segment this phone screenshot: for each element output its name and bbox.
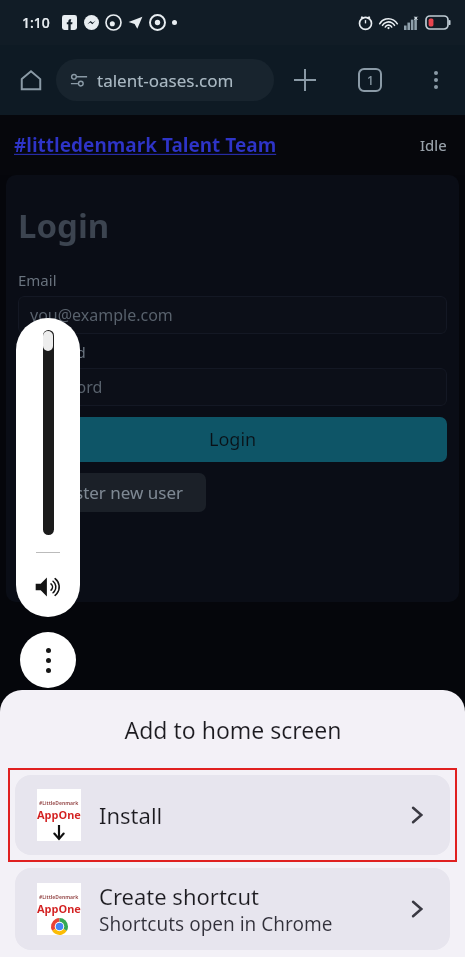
- staticText: Add to home screen: [124, 714, 342, 745]
- staticText: Email: [18, 270, 57, 290]
- button[interactable]: #littledenmark Talent Team: [14, 132, 277, 158]
- button[interactable]: Speaker: [32, 571, 64, 603]
- staticText: Shortcuts open in Chrome: [99, 911, 333, 937]
- staticText: Login: [209, 427, 257, 452]
- button[interactable]: #LittleDenmark: [15, 775, 450, 855]
- staticText: #LittleDenmark: [39, 894, 79, 901]
- button[interactable]: More options: [415, 59, 457, 101]
- button[interactable]: Home: [10, 59, 52, 101]
- button[interactable]: #LittleDenmark: [15, 868, 450, 950]
- button[interactable]: Login: [18, 417, 447, 462]
- staticText: Create shortcut: [99, 881, 259, 911]
- button[interactable]: Volume slider: [16, 318, 80, 617]
- button[interactable]: Switch tabs, 1 open: [348, 58, 392, 102]
- staticText: Password: [30, 376, 103, 398]
- staticText: Idle: [420, 135, 447, 155]
- staticText: you@example.com: [30, 304, 173, 326]
- button[interactable]: More volume settings: [20, 632, 76, 688]
- button[interactable]: Register new user: [18, 473, 206, 512]
- staticText: talent-oases.com: [97, 69, 234, 92]
- staticText: Install: [99, 800, 163, 830]
- staticText: 1: [367, 72, 374, 88]
- staticText: Password: [18, 342, 86, 362]
- button[interactable]: New tab: [283, 58, 327, 102]
- staticText: 1:10: [22, 13, 50, 32]
- staticText: Register new user: [40, 481, 184, 504]
- button[interactable]: talent-oases.com: [56, 59, 274, 101]
- staticText: Login: [18, 203, 110, 248]
- staticText: AppOne: [37, 807, 81, 822]
- staticText: AppOne: [37, 901, 81, 916]
- button[interactable]: Password: [18, 368, 447, 406]
- button[interactable]: you@example.com: [18, 296, 447, 334]
- staticText: #LittleDenmark: [39, 800, 79, 807]
